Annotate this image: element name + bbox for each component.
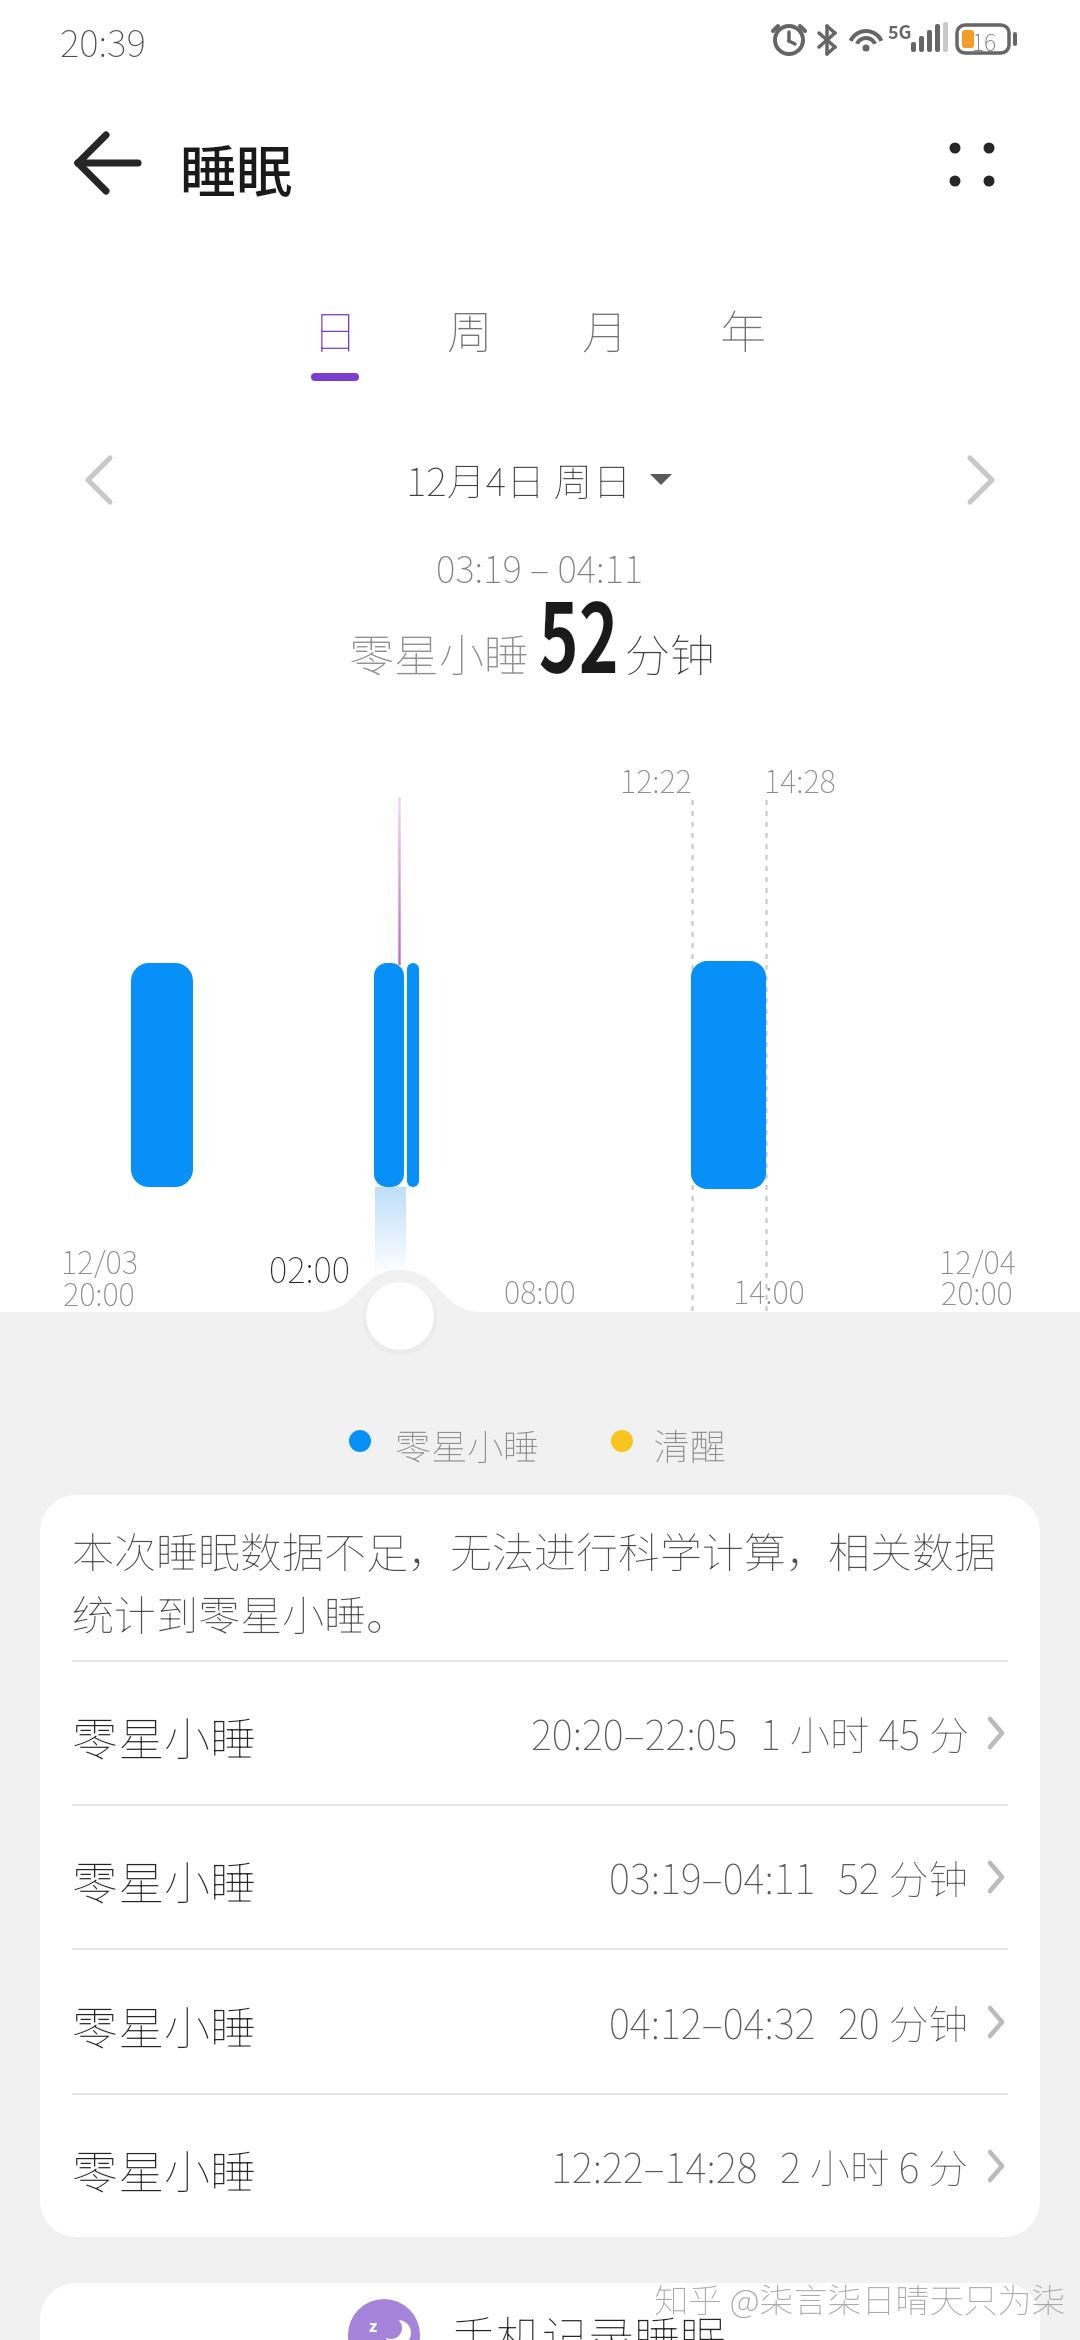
button[interactable]: 年 [688, 294, 798, 364]
staticText: 20:00 [63, 1270, 135, 1310]
staticText: 2 小时 6 分 [780, 2137, 969, 2195]
staticText: 14:00 [733, 1268, 805, 1308]
button[interactable] [930, 123, 1015, 208]
staticText: 52 [539, 562, 619, 701]
staticText: 20:00 [941, 1269, 1013, 1309]
button[interactable] [950, 455, 1010, 505]
staticText: 知乎 @柒言柒日晴天只为柒 [654, 2274, 1066, 2318]
staticText: z [369, 2313, 378, 2336]
staticText: 52 分钟 [838, 1848, 969, 1906]
staticText: 04:12–04:32 [609, 1993, 816, 2051]
staticText: 12/04 [939, 1238, 1016, 1278]
staticText: 5G [888, 18, 912, 42]
button[interactable]: 周 [415, 294, 525, 364]
staticText: 20:39 [60, 14, 146, 58]
staticText: 08:00 [504, 1268, 576, 1308]
staticText: 手机记录睡眠 [450, 2302, 726, 2340]
staticText: 零星小睡 [395, 1418, 540, 1464]
button[interactable] [58, 133, 158, 193]
staticText: 1 小时 45 分 [760, 1704, 969, 1762]
staticText: 12:22 [620, 757, 692, 801]
staticText: 12月4日 周日 [406, 451, 632, 507]
button[interactable]: 月 [550, 294, 660, 364]
staticText: 14:28 [764, 757, 836, 801]
staticText: 零星小睡 [72, 1847, 256, 1907]
button[interactable]: 日 [280, 294, 390, 364]
button[interactable]: 零星小睡 [40, 1950, 1040, 2094]
staticText: 零星小睡 [72, 2136, 256, 2196]
staticText: 03:19 – 04:11 [436, 540, 644, 594]
staticText: 睡眠 [180, 127, 292, 207]
staticText: 12:22–14:28 [551, 2137, 758, 2195]
staticText: 清醒 [654, 1418, 727, 1464]
button[interactable]: 零星小睡 [40, 1805, 1040, 1949]
button[interactable]: 零星小睡 [40, 2094, 1040, 2237]
staticText: 12/03 [61, 1238, 138, 1278]
button[interactable]: z [40, 2283, 1040, 2340]
button[interactable] [70, 455, 130, 505]
staticText: 零星小睡 [349, 620, 530, 685]
staticText: 16 [972, 24, 996, 54]
staticText: 分钟 [625, 620, 716, 685]
staticText: 03:19–04:11 [609, 1848, 816, 1906]
staticText: 周 [447, 296, 493, 363]
staticText: 20 分钟 [838, 1993, 969, 2051]
staticText: 月 [582, 296, 628, 363]
button[interactable]: 零星小睡 [40, 1661, 1040, 1805]
staticText: 日 [312, 296, 358, 363]
staticText: 本次睡眠数据不足，无法进行科学计算，相关数据 统计到零星小睡。 [72, 1519, 997, 1643]
staticText: 02:00 [269, 1242, 351, 1286]
button[interactable]: 12月4日 周日 [329, 448, 749, 510]
staticText: 零星小睡 [72, 1703, 256, 1763]
staticText: 零星小睡 [72, 1992, 256, 2052]
staticText: 20:20–22:05 [531, 1704, 738, 1762]
staticText: 年 [720, 296, 766, 363]
